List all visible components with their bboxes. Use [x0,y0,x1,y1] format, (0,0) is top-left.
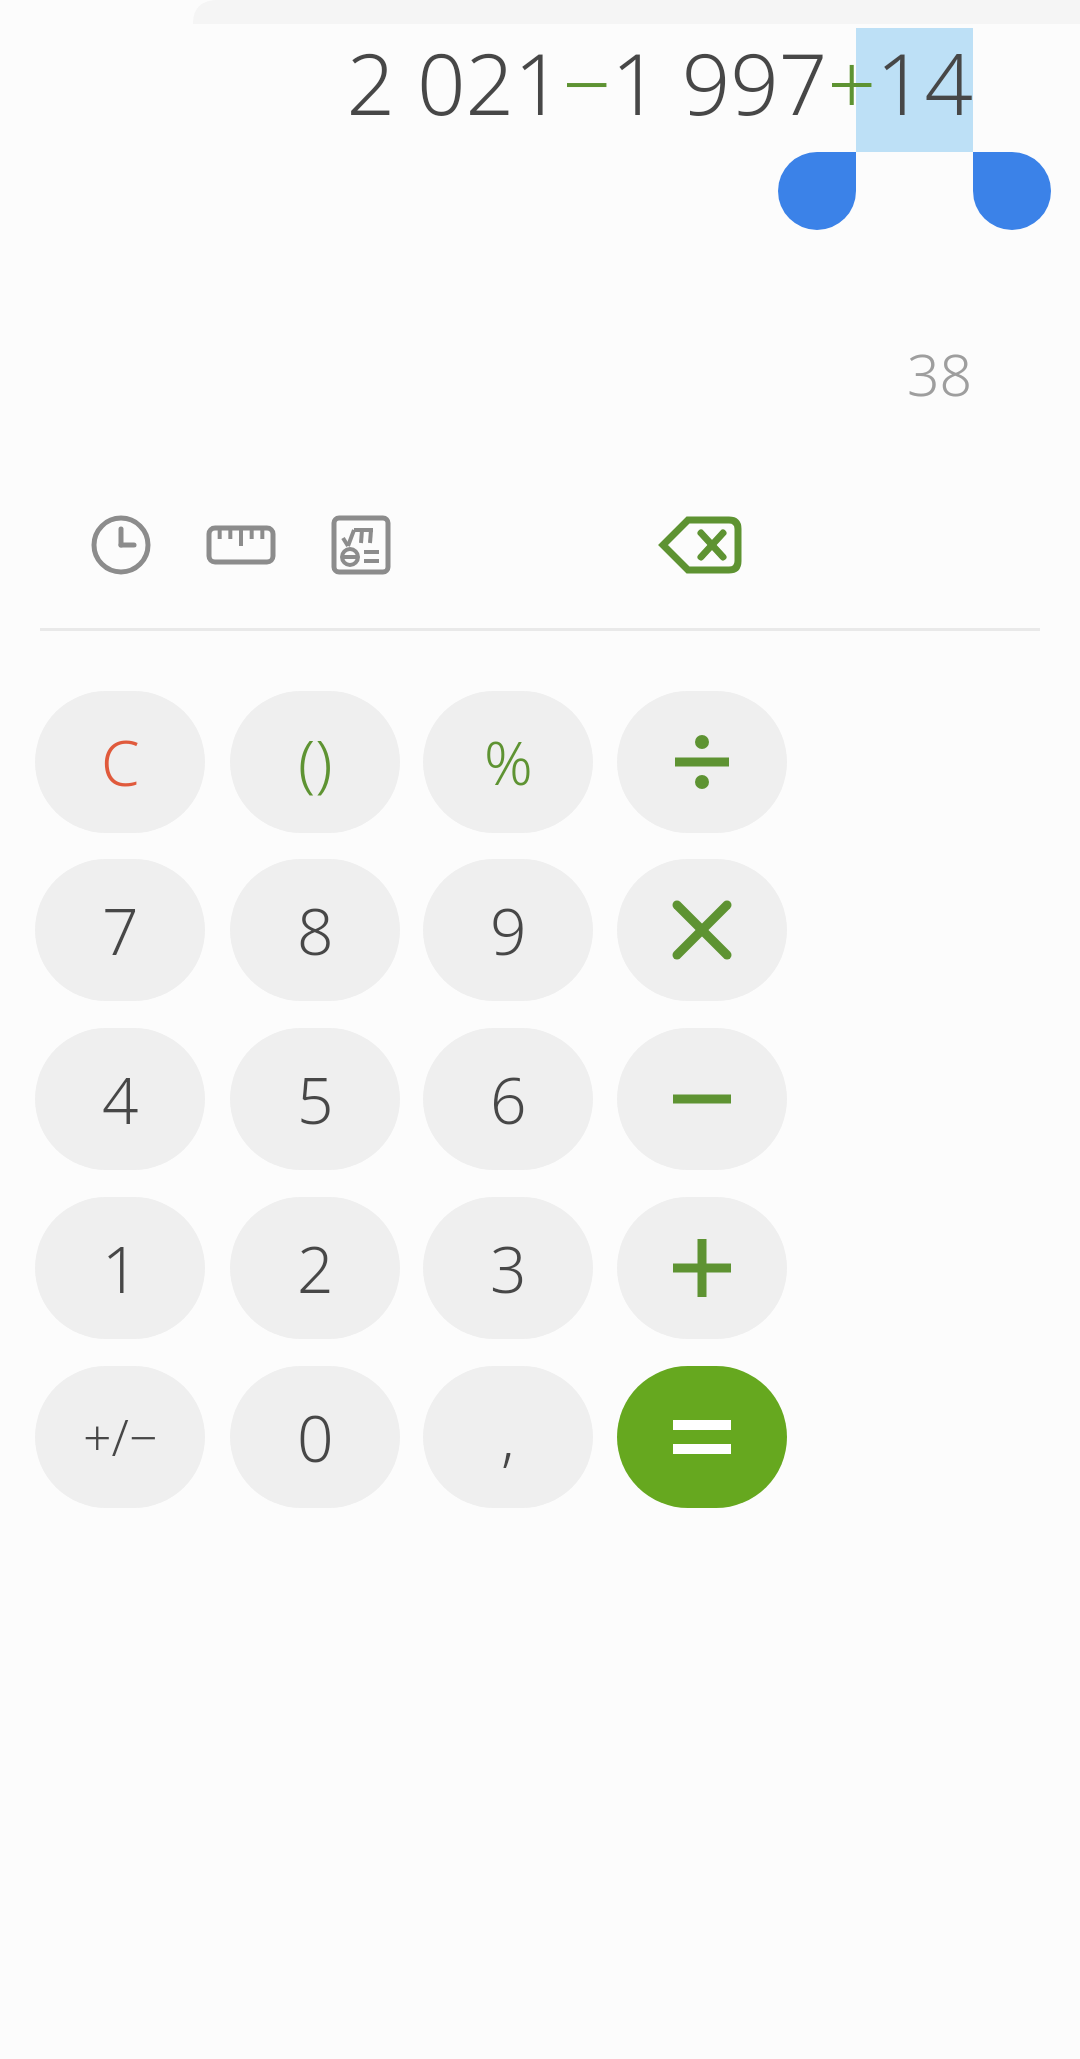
staticText: 2 021−1 997+14 [0,24,973,140]
button[interactable]: 6 [423,1028,593,1170]
staticText: 3 [490,1225,527,1312]
button[interactable]: History [66,490,176,600]
button[interactable]: Formulas [306,490,416,600]
staticText: 1 [102,1225,139,1312]
staticText: 38 [907,335,973,413]
staticText: 9 [490,887,527,974]
button[interactable]: 1 [35,1197,205,1339]
button[interactable]: Parentheses [230,691,400,833]
button[interactable]: Backspace [645,490,755,600]
button[interactable]: 4 [35,1028,205,1170]
staticText: 5 [297,1056,334,1143]
button[interactable]: Plus minus [35,1366,205,1508]
staticText: % [484,721,533,803]
button[interactable]: Add [617,1197,787,1339]
button[interactable]: 5 [230,1028,400,1170]
button[interactable]: Unit converter [186,490,296,600]
staticText: 7 [102,887,139,974]
button[interactable]: Decimal separator [423,1366,593,1508]
staticText: 0 [297,1394,334,1481]
staticText: , [501,1396,515,1478]
button[interactable]: Percent [423,691,593,833]
staticText: 4 [102,1056,139,1143]
button[interactable]: Subtract [617,1028,787,1170]
button[interactable]: 2 [230,1197,400,1339]
staticText: 6 [490,1056,527,1143]
staticText: +/− [83,1403,158,1471]
button[interactable]: 7 [35,859,205,1001]
button[interactable]: 8 [230,859,400,1001]
staticText: C [101,720,140,804]
button[interactable]: Divide [617,691,787,833]
staticText: 2 [297,1225,334,1312]
staticText: () [298,720,333,804]
button[interactable]: 0 [230,1366,400,1508]
button[interactable]: Multiply [617,859,787,1001]
button[interactable]: Equals [617,1366,787,1508]
button[interactable]: 9 [423,859,593,1001]
staticText: 8 [297,887,334,974]
button[interactable]: 3 [423,1197,593,1339]
button[interactable]: Clear [35,691,205,833]
